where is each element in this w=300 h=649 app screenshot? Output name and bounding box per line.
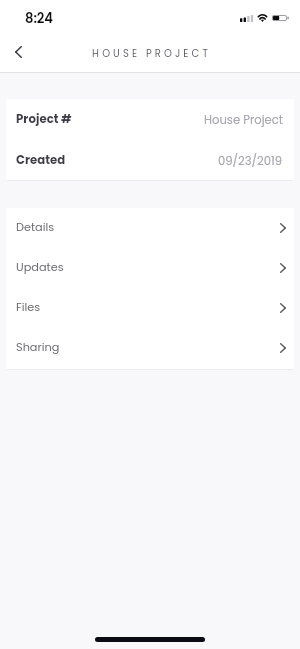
staticText: Sharing: [16, 339, 60, 355]
staticText: House Project: [204, 112, 283, 128]
button[interactable]: Files: [6, 288, 294, 328]
staticText: Files: [16, 299, 41, 315]
staticText: Created: [16, 152, 66, 168]
button[interactable]: Back: [0, 33, 37, 70]
staticText: Updates: [16, 259, 64, 275]
button[interactable]: Details: [6, 208, 294, 248]
staticText: 8:24: [25, 9, 53, 27]
staticText: HOUSE PROJECT: [92, 46, 211, 60]
staticText: Project #: [16, 111, 72, 127]
button[interactable]: Updates: [6, 248, 294, 288]
button[interactable]: Sharing: [6, 328, 294, 368]
staticText: 09/23/2019: [218, 153, 283, 169]
staticText: Details: [16, 219, 55, 235]
